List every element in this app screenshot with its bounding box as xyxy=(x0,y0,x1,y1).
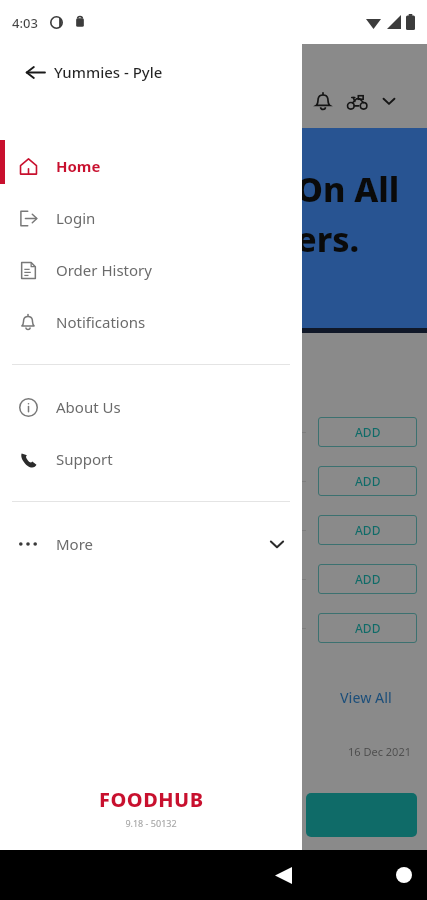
button[interactable]: Login xyxy=(0,192,302,244)
button[interactable] xyxy=(306,793,417,837)
button[interactable]: Expand xyxy=(374,86,404,116)
button[interactable]: Home xyxy=(0,140,302,192)
button[interactable]: ADD xyxy=(318,466,417,496)
staticText: 4:03 xyxy=(12,14,38,32)
button[interactable]: Notifications xyxy=(306,84,340,118)
staticText: ADD xyxy=(355,522,381,538)
staticText: About Us xyxy=(56,397,121,417)
staticText: ADD xyxy=(355,424,381,440)
staticText: ADD xyxy=(355,620,381,636)
staticText: 16 Dec 2021 xyxy=(348,744,411,759)
button[interactable]: ADD xyxy=(318,564,417,594)
button[interactable]: ADD xyxy=(318,515,417,545)
button[interactable]: More xyxy=(0,518,302,570)
staticText: ADD xyxy=(355,571,381,587)
button[interactable]: Support xyxy=(0,433,302,485)
button[interactable]: Notifications xyxy=(0,296,302,348)
button[interactable]: About Us xyxy=(0,381,302,433)
staticText: FOODHUB xyxy=(99,786,204,813)
staticText: Login xyxy=(56,208,96,228)
button[interactable]: Delivery xyxy=(340,84,374,118)
staticText: Home xyxy=(56,156,101,176)
staticText: Order History xyxy=(56,260,152,280)
button[interactable]: Home xyxy=(190,850,427,900)
button[interactable]: Back xyxy=(70,850,427,900)
staticText: On All xyxy=(296,166,400,212)
button[interactable]: Recent apps xyxy=(312,850,427,900)
button[interactable]: Order History xyxy=(0,244,302,296)
button[interactable]: View All xyxy=(340,688,392,707)
staticText: Support xyxy=(56,449,113,469)
staticText: More xyxy=(56,534,94,554)
staticText: Yummies - Pyle xyxy=(54,62,163,82)
staticText: 9.18 - 50132 xyxy=(125,817,177,829)
staticText: View All xyxy=(340,688,392,707)
button[interactable]: Back xyxy=(14,51,56,93)
staticText: Notifications xyxy=(56,312,146,332)
staticText: ADD xyxy=(355,473,381,489)
button[interactable]: ADD xyxy=(318,417,417,447)
staticText: ers. xyxy=(296,216,360,262)
button[interactable]: ADD xyxy=(318,613,417,643)
